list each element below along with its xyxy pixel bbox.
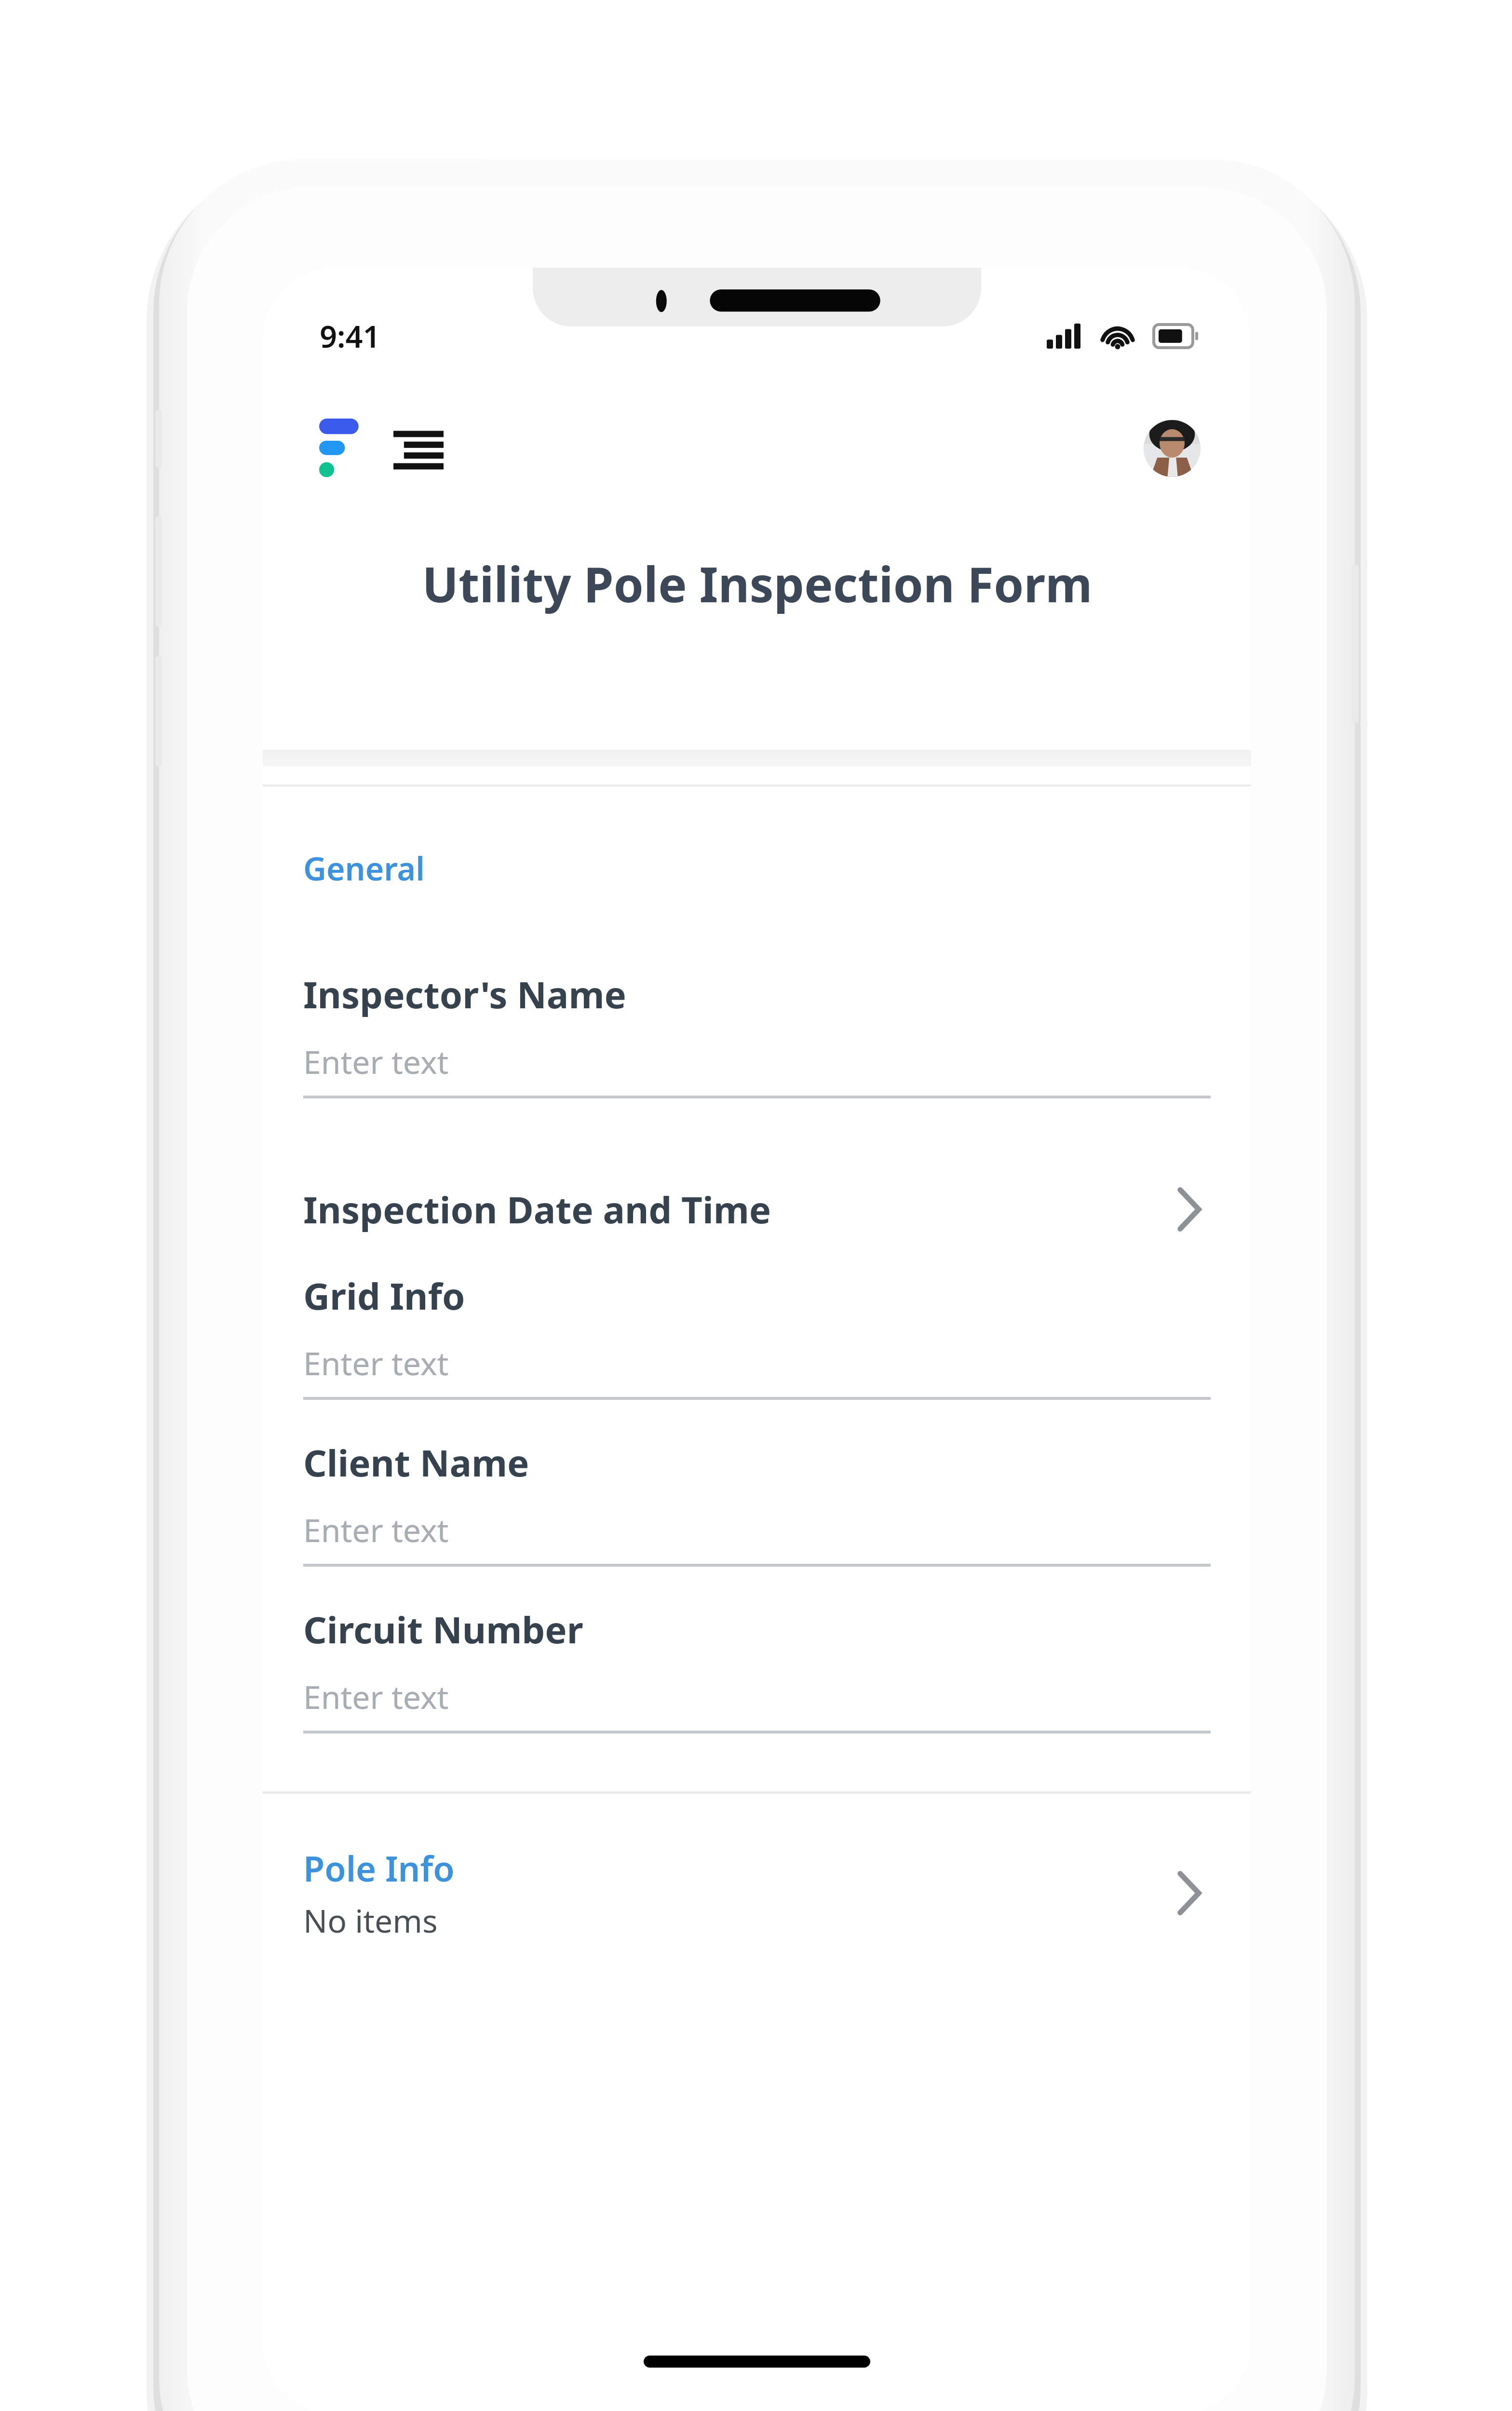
- button[interactable]: Grid Info: [263, 1271, 1251, 1400]
- staticText: Utility Pole Inspection Form: [422, 551, 1093, 616]
- button[interactable]: Profile: [1144, 420, 1201, 477]
- button[interactable]: Fulcrum home: [311, 415, 369, 482]
- staticText: Enter text: [303, 1040, 449, 1083]
- staticText: Grid Info: [303, 1271, 465, 1321]
- staticText: Enter text: [303, 1341, 449, 1384]
- staticText: Enter text: [303, 1675, 449, 1718]
- button[interactable]: Inspection Date and Time: [263, 1159, 1251, 1260]
- other: Open: [1167, 1867, 1211, 1920]
- other: Open: [1167, 1183, 1211, 1236]
- button[interactable]: Client Name: [263, 1437, 1251, 1567]
- button[interactable]: Circuit Number: [263, 1604, 1251, 1734]
- staticText: Client Name: [303, 1437, 529, 1488]
- staticText: No items: [303, 1898, 438, 1942]
- staticText: Circuit Number: [303, 1604, 583, 1654]
- button[interactable]: Inspector's Name: [263, 969, 1251, 1098]
- staticText: Pole Info: [303, 1844, 455, 1892]
- staticText: Enter text: [303, 1508, 449, 1551]
- staticText: 9:41: [320, 315, 380, 357]
- button[interactable]: Pole Info: [263, 1844, 1251, 1942]
- staticText: Inspection Date and Time: [303, 1184, 771, 1234]
- button[interactable]: Menu: [382, 412, 455, 485]
- staticText: General: [303, 846, 425, 890]
- staticText: Inspector's Name: [303, 969, 626, 1019]
